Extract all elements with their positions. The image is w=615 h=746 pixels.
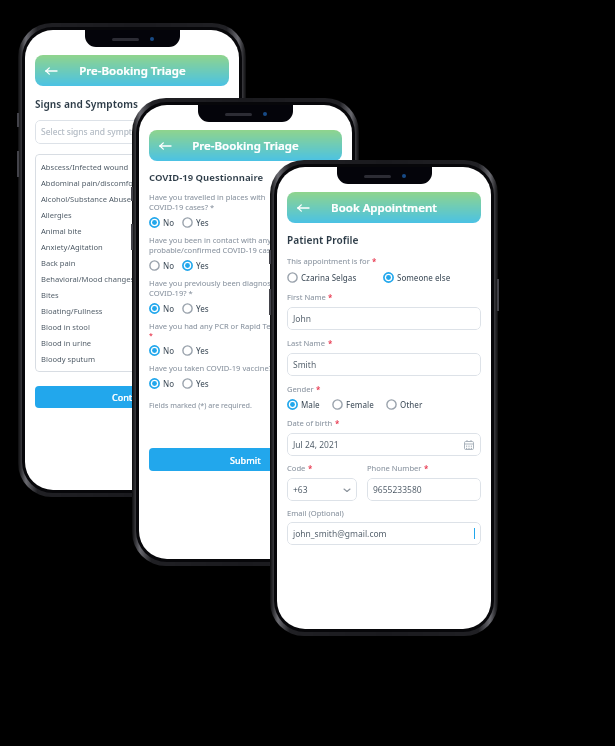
staticText: Code [287, 463, 306, 473]
staticText: Czarina Selgas [301, 272, 357, 283]
staticText: Yes [196, 217, 209, 228]
staticText: This appointment is for [287, 256, 370, 266]
staticText: * [424, 463, 429, 474]
staticText: Have you travelled in places with COVID-… [149, 192, 266, 212]
staticText: Signs and Symptoms [35, 97, 138, 111]
staticText: * [316, 384, 321, 395]
staticText: Allergies [41, 210, 72, 220]
button[interactable]: Behavioral/Mood changes [35, 271, 229, 287]
button[interactable]: Back [154, 135, 176, 157]
button[interactable]: Yes [182, 344, 209, 357]
button[interactable]: Back [35, 55, 229, 86]
button[interactable]: Back pain [35, 255, 229, 271]
staticText: Pre-Booking Triage [192, 138, 299, 154]
button[interactable]: Submit [149, 448, 342, 471]
staticText: Pre-Booking Triage [79, 63, 186, 79]
button[interactable]: Animal bite [35, 223, 229, 239]
staticText: Patient Profile [287, 233, 359, 247]
staticText: Yes [196, 378, 209, 389]
button[interactable]: Select signs and symptoms [35, 120, 229, 144]
staticText: john_smith@gmail.com [293, 528, 474, 540]
staticText: * [372, 256, 377, 267]
staticText: Alcohol/Substance Abuse [41, 194, 132, 204]
button[interactable]: Abscess/Infected wound [35, 159, 229, 175]
button[interactable]: 9655233580 [367, 478, 481, 501]
button[interactable]: Blood in urine [35, 335, 229, 351]
button[interactable]: No [149, 259, 175, 272]
staticText: Have you had any PCR or Rapid Test? [149, 321, 281, 331]
staticText: Yes [196, 303, 209, 314]
button[interactable]: No [149, 377, 175, 390]
staticText: * [149, 331, 153, 341]
button[interactable]: No [149, 216, 175, 229]
button[interactable]: John [287, 307, 481, 330]
button[interactable]: Czarina Selgas [287, 271, 357, 284]
button[interactable]: No [149, 302, 175, 315]
button[interactable]: Yes [182, 259, 209, 272]
staticText: * [328, 338, 333, 349]
button[interactable]: Smith [287, 353, 481, 376]
button[interactable]: Alcohol/Substance Abuse [35, 191, 229, 207]
staticText: No [163, 345, 175, 356]
staticText: Fields marked (*) are required. [149, 400, 252, 410]
staticText: Submit [230, 454, 261, 466]
staticText: Gender [287, 384, 314, 394]
staticText: Have you taken COVID-19 vaccine? [149, 363, 273, 373]
button[interactable]: Back [292, 197, 314, 219]
staticText: Yes [196, 260, 209, 271]
staticText: Have you previously been diagnosed with … [149, 278, 298, 298]
button[interactable]: Pick date [463, 439, 475, 451]
staticText: Phone Number [367, 463, 422, 473]
button[interactable]: Yes [182, 302, 209, 315]
button[interactable]: Bloody sputum [35, 351, 229, 367]
button[interactable]: Bloating/Fullness [35, 303, 229, 319]
staticText: Jul 24, 2021 [293, 439, 463, 451]
button[interactable]: Someone else [383, 271, 451, 284]
staticText: No [163, 378, 175, 389]
button[interactable]: Back [287, 192, 481, 223]
button[interactable]: No [149, 344, 175, 357]
staticText: Female [346, 399, 374, 410]
staticText: No [163, 303, 175, 314]
staticText: Male [301, 399, 320, 410]
button[interactable]: +63 [287, 478, 357, 501]
staticText: Anxiety/Agitation [41, 242, 103, 252]
button[interactable]: Other [386, 398, 423, 411]
staticText: Yes [196, 345, 209, 356]
button[interactable]: Anxiety/Agitation [35, 239, 229, 255]
button[interactable]: Back [40, 60, 62, 82]
staticText: * [328, 292, 333, 303]
staticText: 9655233580 [373, 484, 475, 496]
staticText: * [335, 418, 340, 429]
button[interactable]: Abdominal pain/discomfort [35, 175, 229, 191]
button[interactable]: Back [149, 130, 342, 161]
button[interactable]: Blood in stool [35, 319, 229, 335]
staticText: Email (Optional) [287, 508, 344, 518]
button[interactable]: Allergies [35, 207, 229, 223]
staticText: Someone else [397, 272, 451, 283]
button[interactable]: Continue [35, 386, 229, 408]
staticText: No [163, 217, 175, 228]
button[interactable]: Male [287, 398, 320, 411]
staticText: Abdominal pain/discomfort [41, 178, 139, 188]
button[interactable]: Yes [182, 216, 209, 229]
staticText: Have you been in contact with any probab… [149, 235, 288, 255]
button[interactable]: Yes [182, 377, 209, 390]
staticText: Back pain [41, 258, 76, 268]
button[interactable]: Bites [35, 287, 229, 303]
staticText: Behavioral/Mood changes [41, 274, 135, 284]
button[interactable]: Female [332, 398, 374, 411]
staticText: Blood in urine [41, 338, 92, 348]
staticText: No [163, 260, 175, 271]
staticText: Bloating/Fullness [41, 306, 103, 316]
button[interactable]: Jul 24, 2021 [287, 433, 481, 456]
staticText: John [293, 313, 475, 325]
staticText: Last Name [287, 338, 326, 348]
staticText: * [308, 463, 313, 474]
staticText: Bloody sputum [41, 354, 96, 364]
staticText: Continue [112, 391, 152, 403]
staticText: Animal bite [41, 226, 82, 236]
staticText: Blood in stool [41, 322, 90, 332]
staticText: Select signs and symptoms [41, 126, 223, 138]
button[interactable]: john_smith@gmail.com [287, 522, 481, 545]
